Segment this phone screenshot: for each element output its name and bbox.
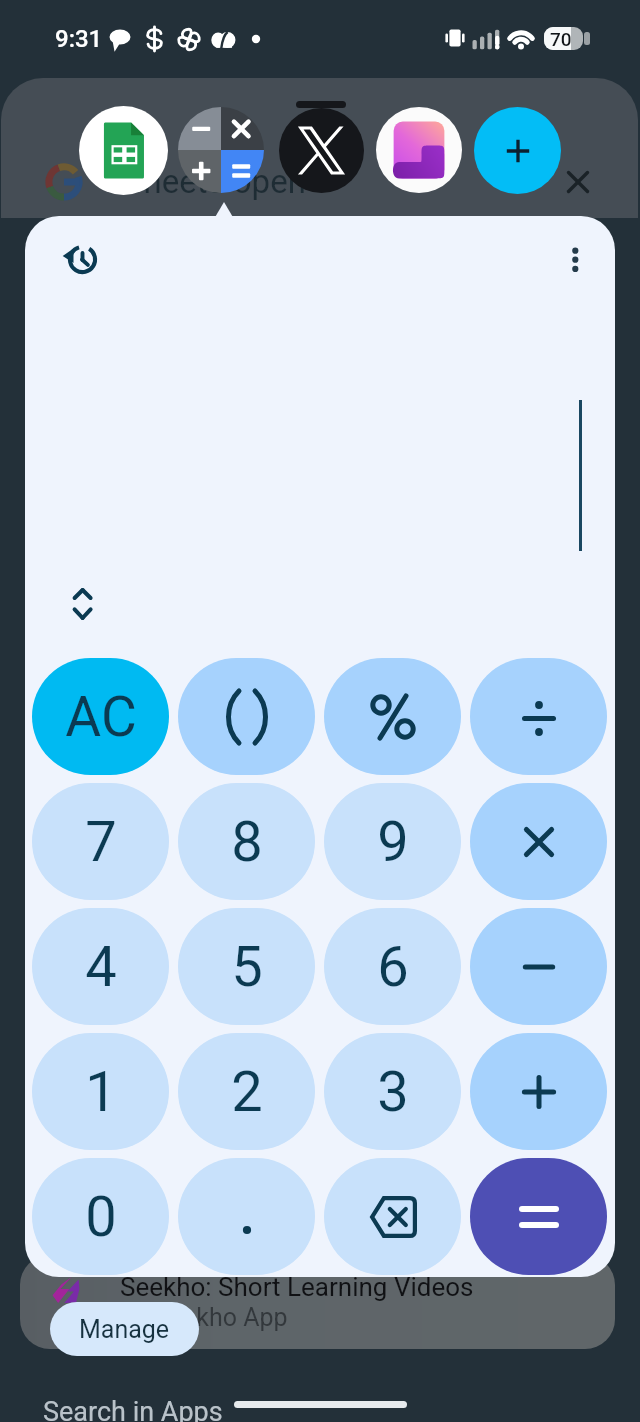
staticText: 6 — [377, 934, 409, 1000]
button[interactable]: 9 — [324, 783, 461, 900]
button[interactable]: Loop — [376, 107, 462, 193]
button[interactable]: Add bubble — [474, 107, 561, 194]
staticText: Manage — [79, 1315, 170, 1344]
staticText: Search in Apps — [43, 1396, 223, 1422]
button[interactable]: 6 — [324, 908, 461, 1025]
button[interactable] — [324, 658, 461, 775]
button[interactable]: 4 — [32, 908, 169, 1025]
staticText: Sheets open — [124, 162, 306, 201]
button[interactable] — [470, 783, 607, 900]
button[interactable] — [178, 1158, 315, 1275]
button[interactable] — [324, 1158, 461, 1275]
staticText: 9:31 — [55, 25, 103, 53]
staticText: 2 — [231, 1059, 263, 1125]
button[interactable]: 0 — [32, 1158, 169, 1275]
button[interactable]: 7 — [32, 783, 169, 900]
button[interactable] — [178, 658, 315, 775]
button[interactable]: 3 — [324, 1033, 461, 1150]
button[interactable]: History — [56, 235, 104, 283]
button[interactable]: Google Sheets — [79, 106, 168, 195]
staticText: 4 — [85, 934, 117, 1000]
button[interactable]: 8 — [178, 783, 315, 900]
button[interactable] — [470, 1158, 607, 1275]
button[interactable]: Calculator — [178, 107, 264, 193]
staticText: 0 — [85, 1184, 117, 1250]
staticText: Seekho: Short Learning Videos — [120, 1272, 474, 1302]
button[interactable] — [470, 658, 607, 775]
staticText: 1 — [85, 1059, 117, 1125]
button[interactable]: 2 — [178, 1033, 315, 1150]
button[interactable]: Expand display — [59, 580, 107, 628]
button[interactable] — [470, 908, 607, 1025]
staticText: 7 — [85, 809, 117, 875]
staticText: 8 — [231, 809, 263, 875]
button[interactable]: X — [279, 108, 364, 193]
staticText: 3 — [377, 1059, 409, 1125]
staticText: AC — [65, 685, 137, 749]
button[interactable]: AC — [32, 658, 169, 775]
staticText: 9 — [377, 809, 409, 875]
button[interactable]: More options — [551, 236, 599, 284]
button[interactable] — [470, 1033, 607, 1150]
staticText: Seekho App — [155, 1303, 288, 1332]
button[interactable]: 5 — [178, 908, 315, 1025]
button[interactable]: 1 — [32, 1033, 169, 1150]
staticText: 70 — [550, 28, 572, 50]
button[interactable]: Close — [560, 164, 596, 200]
staticText: 5 — [231, 934, 263, 1000]
button[interactable]: Manage — [50, 1302, 199, 1356]
